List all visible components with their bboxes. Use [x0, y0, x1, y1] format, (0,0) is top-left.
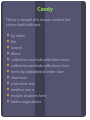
staticText: search — [11, 45, 22, 50]
staticText: Candy — [0, 6, 90, 13]
staticText: collections and sub-collections here — [11, 57, 70, 62]
staticText: by index — [11, 33, 25, 38]
staticText: recipes chapters here — [11, 93, 47, 98]
staticText: short text — [11, 75, 27, 80]
button[interactable]: short text — [0, 74, 90, 80]
staticText: This is a sample of a simple content lis… — [6, 17, 80, 27]
button[interactable]: by index — [0, 32, 90, 38]
staticText: collections and sub-collections here — [11, 63, 70, 68]
button[interactable]: items by alphabetical order now — [0, 68, 90, 74]
staticText: a bit more text — [11, 81, 36, 86]
button[interactable]: filters — [0, 50, 90, 56]
button[interactable]: a bit more text — [0, 80, 90, 86]
staticText: another one x — [11, 87, 35, 92]
button[interactable]: collections and sub-collections here — [0, 56, 90, 62]
staticText: list — [11, 39, 16, 44]
button[interactable]: another one x — [0, 86, 90, 92]
button[interactable]: list — [0, 38, 90, 44]
button[interactable]: tables organised x — [0, 98, 90, 104]
button[interactable]: collections and sub-collections here — [0, 62, 90, 68]
button[interactable]: search — [0, 44, 90, 50]
button[interactable]: recipes chapters here — [0, 92, 90, 98]
staticText: items by alphabetical order now — [11, 69, 64, 74]
staticText: filters — [11, 51, 21, 56]
staticText: tables organised x — [11, 99, 42, 104]
